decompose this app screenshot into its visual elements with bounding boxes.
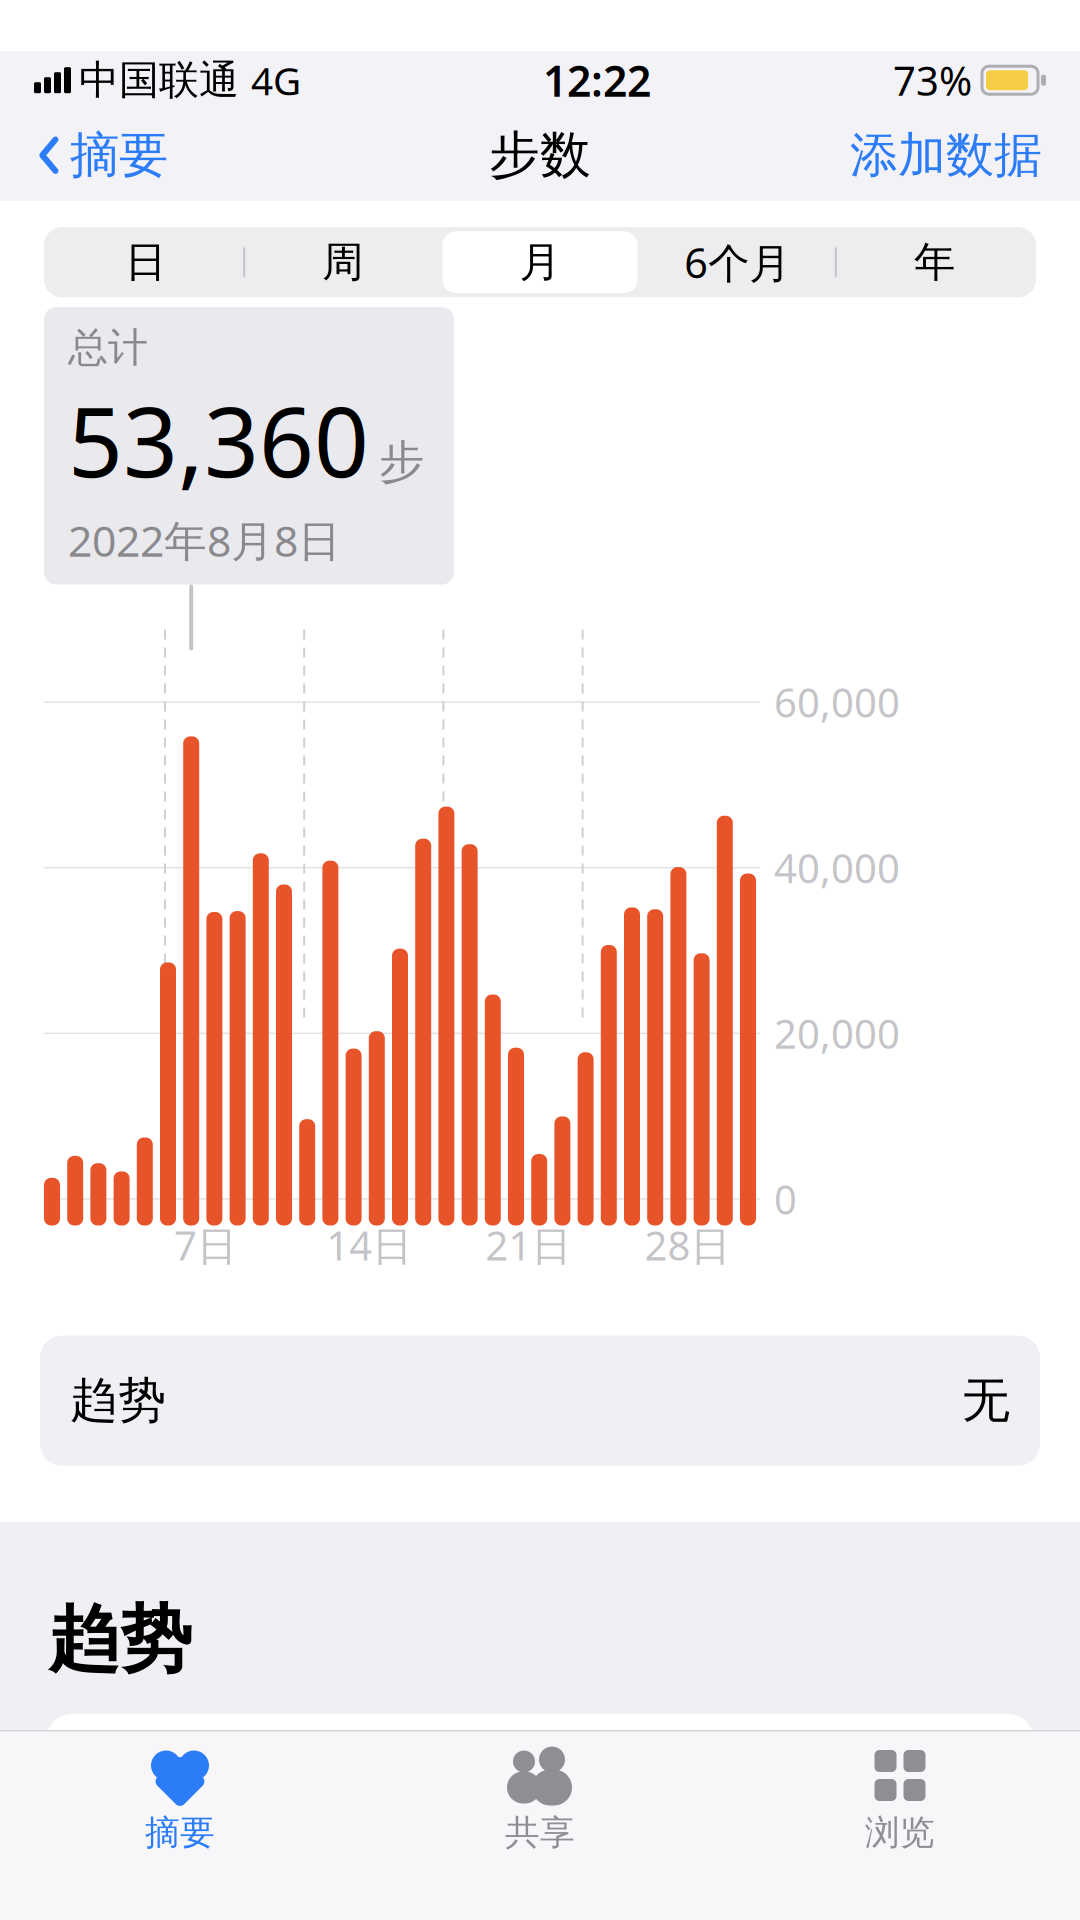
button[interactable]: 共享 xyxy=(360,1731,720,1854)
staticText: 趋势 xyxy=(48,1596,192,1684)
staticText: 趋势 xyxy=(70,1371,166,1430)
staticText: 日 xyxy=(125,237,166,288)
staticText: 53,360 xyxy=(68,376,369,504)
button[interactable]: 年 xyxy=(837,231,1032,293)
staticText: 步数 xyxy=(126,1750,222,1809)
button[interactable]: 趋势 xyxy=(40,1336,1040,1466)
staticText: 步数 xyxy=(489,124,591,186)
staticText: 年 xyxy=(914,237,955,288)
staticText: 4G xyxy=(251,55,301,106)
button[interactable]: 摘要 xyxy=(32,115,174,195)
staticText: 无 xyxy=(962,1371,1010,1430)
staticText: 总计 xyxy=(68,323,148,372)
button[interactable]: 月 xyxy=(442,231,638,293)
staticText: 周 xyxy=(322,237,363,288)
staticText: 2022年8月8日 xyxy=(68,512,341,568)
staticText: 60,000 xyxy=(774,675,900,729)
staticText: 20,000 xyxy=(774,1007,900,1060)
button[interactable]: 日 xyxy=(48,231,243,293)
staticText: 月 xyxy=(519,237,560,288)
staticText: 7日 xyxy=(174,1218,237,1272)
button[interactable]: 6个月 xyxy=(640,231,835,293)
button[interactable]: 浏览 xyxy=(720,1731,1080,1854)
staticText: 浏览 xyxy=(865,1811,935,1854)
staticText: 40,000 xyxy=(774,841,900,894)
staticText: 添加数据 xyxy=(850,126,1042,185)
staticText: 过去6周渐趋上升 xyxy=(88,1835,573,1920)
staticText: 步 xyxy=(379,434,424,490)
staticText: 中国联通 xyxy=(79,56,239,105)
staticText: 28日 xyxy=(645,1218,731,1272)
staticText: 73% xyxy=(893,54,972,107)
staticText: 14日 xyxy=(326,1218,412,1272)
staticText: 0 xyxy=(774,1172,797,1225)
staticText: 6个月 xyxy=(684,235,790,290)
staticText: 21日 xyxy=(485,1218,571,1272)
staticText: 摘要 xyxy=(145,1811,215,1854)
button[interactable]: 添加数据 xyxy=(844,116,1048,195)
staticText: 12:22 xyxy=(543,52,651,109)
staticText: 共享 xyxy=(505,1811,575,1854)
button[interactable]: 摘要 xyxy=(0,1731,360,1854)
staticText: 摘要 xyxy=(70,125,168,185)
button[interactable]: 周 xyxy=(245,231,440,293)
